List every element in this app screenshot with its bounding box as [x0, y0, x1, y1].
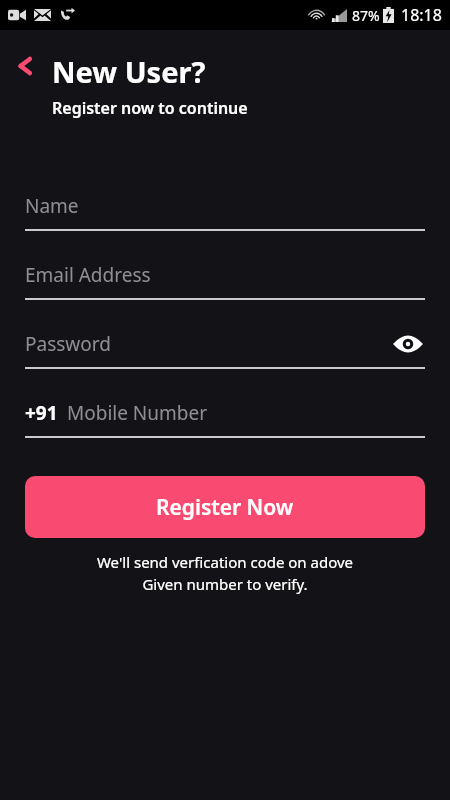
- button[interactable]: Show password: [391, 327, 425, 361]
- button[interactable]: Email Address: [25, 258, 425, 300]
- staticText: Password: [25, 331, 111, 357]
- button[interactable]: Password: [25, 327, 425, 369]
- button[interactable]: Back: [10, 50, 42, 82]
- button[interactable]: +91: [25, 396, 425, 438]
- staticText: We'll send verfication code on adove Giv…: [0, 552, 450, 595]
- staticText: 18:18: [401, 4, 442, 26]
- staticText: Mobile Number: [67, 400, 208, 426]
- staticText: Email Address: [25, 262, 151, 288]
- staticText: Register Now: [156, 493, 294, 522]
- staticText: 87%: [352, 6, 380, 25]
- button[interactable]: Register Now: [25, 476, 425, 538]
- staticText: New User?: [52, 52, 206, 91]
- staticText: +91: [25, 400, 58, 426]
- staticText: Name: [25, 193, 79, 219]
- button[interactable]: Name: [25, 189, 425, 231]
- staticText: Register now to continue: [52, 97, 248, 119]
